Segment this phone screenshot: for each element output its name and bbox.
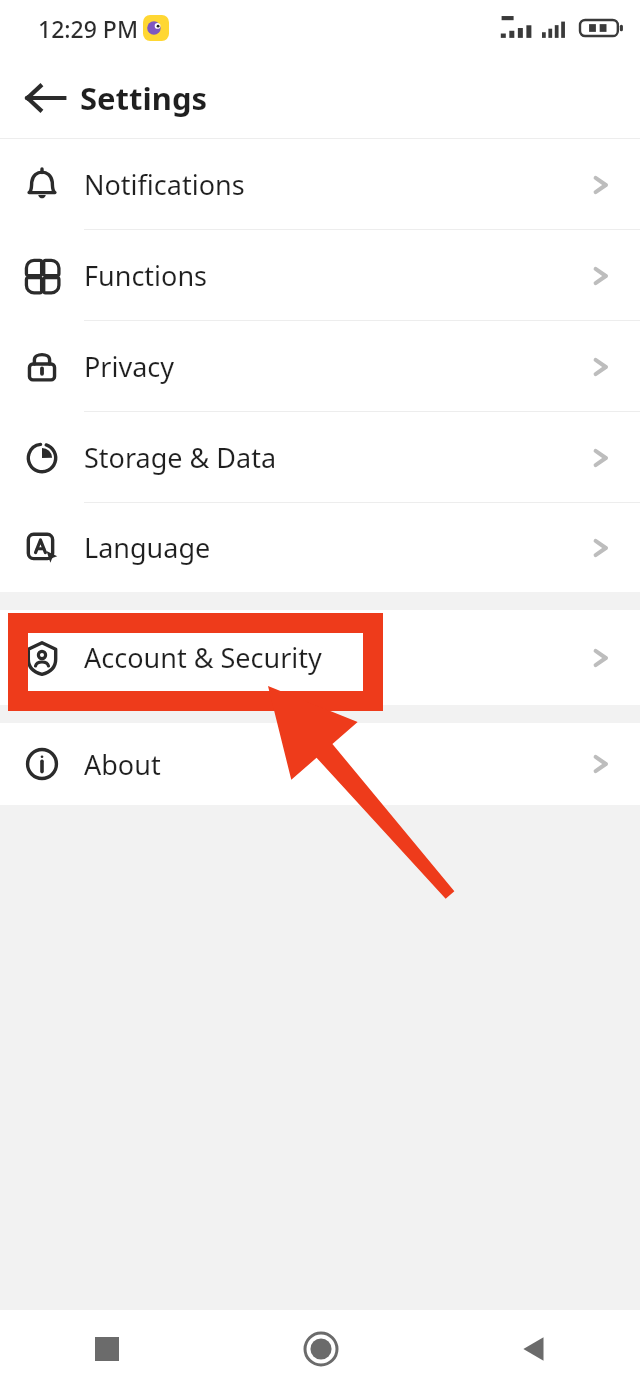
staticText: Account & Security <box>84 639 322 676</box>
staticText: 12:29 PM <box>38 13 139 44</box>
staticText: Privacy <box>84 348 175 385</box>
button[interactable]: Privacy <box>0 321 640 412</box>
button[interactable]: Home <box>214 1310 427 1387</box>
button[interactable]: Language <box>0 503 640 592</box>
button[interactable]: Account & Security <box>0 610 640 705</box>
button[interactable]: About <box>0 723 640 805</box>
button[interactable]: Storage & Data <box>0 412 640 503</box>
staticText: Language <box>84 529 211 566</box>
staticText: Functions <box>84 257 208 294</box>
button[interactable]: Notifications <box>0 139 640 230</box>
button[interactable]: Recents <box>0 1310 214 1387</box>
staticText: Settings <box>80 77 208 119</box>
button[interactable]: Functions <box>0 230 640 321</box>
button[interactable]: Back <box>22 75 68 121</box>
staticText: About <box>84 746 161 783</box>
staticText: Storage & Data <box>84 439 277 476</box>
staticText: Notifications <box>84 166 245 203</box>
button[interactable]: Back <box>427 1310 640 1387</box>
